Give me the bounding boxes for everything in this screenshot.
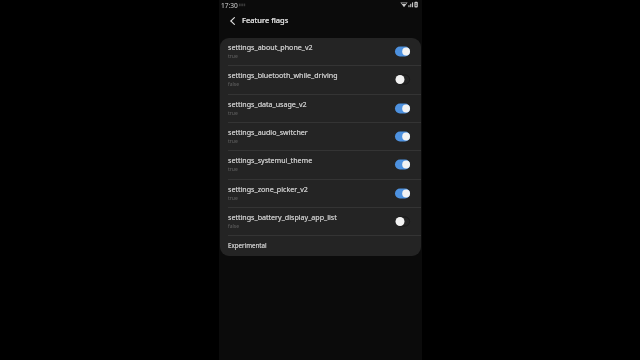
button[interactable]: settings_bluetooth_while_driving	[220, 66, 421, 94]
button[interactable]: settings_zone_picker_v2	[220, 180, 421, 208]
button[interactable]: Toggle on	[395, 188, 411, 199]
button[interactable]: settings_about_phone_v2	[220, 38, 421, 66]
button[interactable]: Back	[224, 13, 240, 29]
button[interactable]: Toggle off	[395, 216, 411, 227]
button[interactable]: Toggle on	[395, 103, 411, 114]
staticText: settings_audio_switcher	[228, 127, 308, 137]
button[interactable]: Toggle on	[395, 159, 411, 170]
staticText: true	[228, 110, 238, 117]
staticText: settings_zone_picker_v2	[228, 184, 308, 194]
staticText: Feature flags	[242, 15, 289, 25]
staticText: settings_data_usage_v2	[228, 99, 307, 109]
staticText: false	[228, 81, 240, 88]
button[interactable]: Toggle on	[395, 131, 411, 142]
staticText: settings_systemui_theme	[228, 155, 313, 165]
button[interactable]: settings_battery_display_app_list	[220, 208, 421, 236]
button[interactable]: settings_systemui_theme	[220, 151, 421, 179]
staticText: true	[228, 195, 238, 202]
staticText: true	[228, 138, 238, 145]
staticText: settings_bluetooth_while_driving	[228, 70, 338, 80]
staticText: 17:30	[221, 1, 238, 10]
staticText: true	[228, 166, 238, 173]
button[interactable]: Toggle off	[395, 74, 411, 85]
staticText: false	[228, 223, 240, 230]
button[interactable]: settings_data_usage_v2	[220, 95, 421, 123]
staticText: settings_about_phone_v2	[228, 42, 313, 52]
button[interactable]: settings_audio_switcher	[220, 123, 421, 151]
staticText: settings_battery_display_app_list	[228, 212, 337, 222]
staticText: Experimental	[228, 241, 267, 249]
button[interactable]: Toggle on	[395, 46, 411, 57]
staticText: true	[228, 53, 238, 60]
